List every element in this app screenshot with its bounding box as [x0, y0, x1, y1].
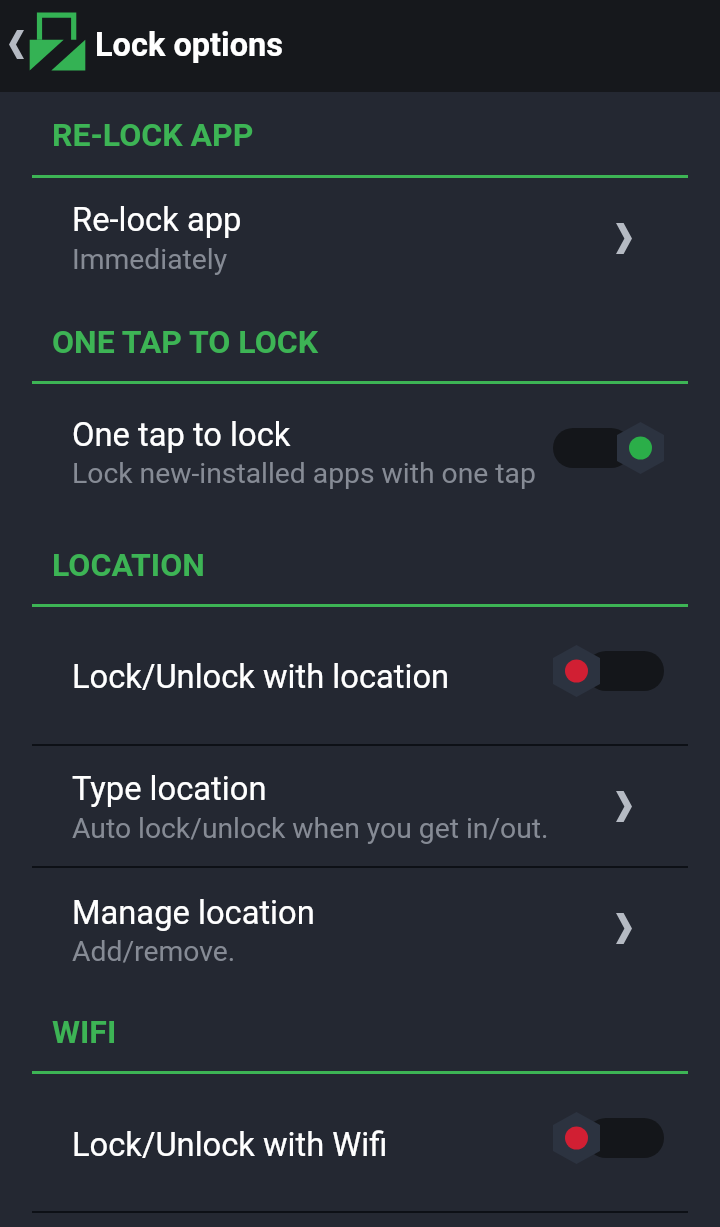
- staticText: WIFI: [52, 1013, 117, 1051]
- staticText: Lock options: [95, 26, 283, 64]
- staticText: Auto lock/unlock when you get in/out.: [72, 812, 549, 845]
- button[interactable]: Enabled: [553, 422, 664, 474]
- staticText: LOCATION: [52, 546, 205, 584]
- button[interactable]: Open: [601, 902, 647, 954]
- button[interactable]: Lock/Unlock with location: [0, 607, 720, 744]
- staticText: Type location: [72, 770, 267, 808]
- staticText: Lock new-installed apps with one tap: [72, 457, 536, 490]
- button[interactable]: Disabled: [553, 1112, 664, 1164]
- staticText: Lock/Unlock with Wifi: [72, 1126, 388, 1164]
- button[interactable]: Back to Lock options: [0, 0, 720, 92]
- button[interactable]: Type location: [0, 746, 720, 866]
- button[interactable]: Disabled: [553, 645, 664, 697]
- button[interactable]: Open: [601, 780, 647, 832]
- button[interactable]: Lock/Unlock with Wifi: [0, 1074, 720, 1211]
- staticText: Re-lock app: [72, 201, 242, 239]
- staticText: RE-LOCK APP: [52, 116, 254, 154]
- staticText: Manage location: [72, 894, 315, 932]
- button[interactable]: Open: [601, 212, 647, 264]
- staticText: One tap to lock: [72, 416, 291, 454]
- staticText: Lock/Unlock with location: [72, 658, 450, 696]
- button[interactable]: Re-lock app: [0, 178, 720, 298]
- button[interactable]: One tap to lock: [0, 384, 720, 521]
- button[interactable]: Manage location: [0, 868, 720, 988]
- staticText: ONE TAP TO LOCK: [52, 323, 319, 361]
- staticText: Immediately: [72, 243, 228, 276]
- staticText: Add/remove.: [72, 935, 236, 968]
